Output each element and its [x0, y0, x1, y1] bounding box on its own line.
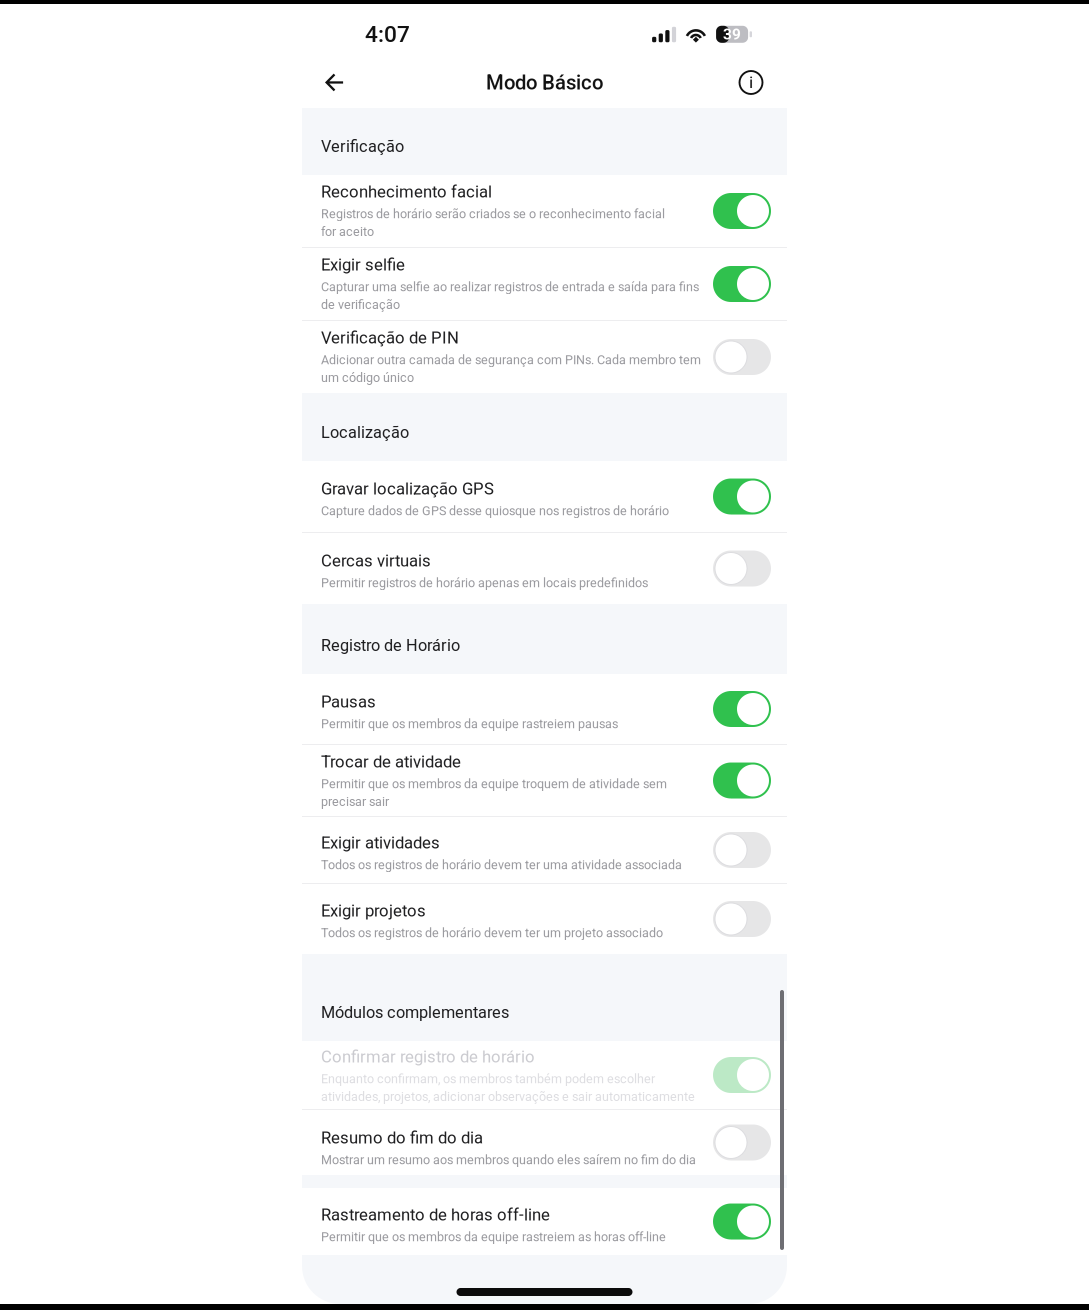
staticText: 39	[723, 25, 741, 43]
staticText: Todos os registros de horário devem ter …	[321, 857, 682, 872]
button[interactable]: Reconhecimento facial	[302, 175, 787, 248]
staticText: Registro de Horário	[321, 636, 460, 655]
staticText: 4:07	[365, 21, 410, 48]
button[interactable]: Pausas	[302, 674, 787, 745]
button[interactable]: Exigir projetos	[302, 884, 787, 954]
button[interactable]: Trocar de atividade	[302, 745, 787, 817]
button[interactable]: Resumo do fim do dia	[302, 1110, 787, 1175]
staticText: Trocar de atividade	[321, 752, 461, 771]
staticText: Módulos complementares	[321, 1003, 509, 1022]
button[interactable]: Confirmar registro de horário	[302, 1041, 787, 1110]
staticText: Rastreamento de horas off-line	[321, 1205, 550, 1224]
staticText: Verificação de PIN	[321, 328, 459, 347]
staticText: Resumo do fim do dia	[321, 1128, 483, 1147]
staticText: Capture dados de GPS desse quiosque nos …	[321, 503, 669, 518]
staticText: Capturar uma selfie ao realizar registro…	[321, 279, 699, 312]
staticText: Todos os registros de horário devem ter …	[321, 925, 663, 940]
staticText: Cercas virtuais	[321, 551, 431, 570]
button[interactable]: Cercas virtuais	[302, 533, 787, 604]
button[interactable]: Verificação de PIN	[302, 321, 787, 393]
staticText: Localização	[321, 423, 409, 442]
button[interactable]: Exigir selfie	[302, 248, 787, 321]
staticText: Registros de horário serão criados se o …	[321, 206, 665, 239]
staticText: Confirmar registro de horário	[321, 1047, 535, 1066]
staticText: Enquanto confirmam, os membros também po…	[321, 1071, 695, 1104]
button[interactable]: Information	[731, 60, 771, 104]
staticText: i	[749, 72, 753, 93]
staticText: Permitir que os membros da equipe troque…	[321, 776, 667, 809]
staticText: Pausas	[321, 692, 376, 711]
staticText: Mostrar um resumo aos membros quando ele…	[321, 1152, 696, 1167]
staticText: Verificação	[321, 137, 404, 156]
staticText: Exigir selfie	[321, 255, 405, 274]
staticText: Modo Básico	[486, 71, 603, 94]
staticText: Permitir que os membros da equipe rastre…	[321, 716, 618, 731]
staticText: Reconhecimento facial	[321, 182, 492, 201]
staticText: Permitir registros de horário apenas em …	[321, 575, 648, 590]
staticText: Adicionar outra camada de segurança com …	[321, 352, 701, 385]
staticText: Exigir projetos	[321, 901, 426, 920]
staticText: Permitir que os membros da equipe rastre…	[321, 1229, 666, 1244]
button[interactable]: Exigir atividades	[302, 817, 787, 884]
staticText: Exigir atividades	[321, 833, 440, 852]
button[interactable]: Gravar localização GPS	[302, 461, 787, 533]
button[interactable]: Back	[315, 60, 355, 104]
button[interactable]: Rastreamento de horas off-line	[302, 1188, 787, 1255]
staticText: Gravar localização GPS	[321, 479, 494, 498]
